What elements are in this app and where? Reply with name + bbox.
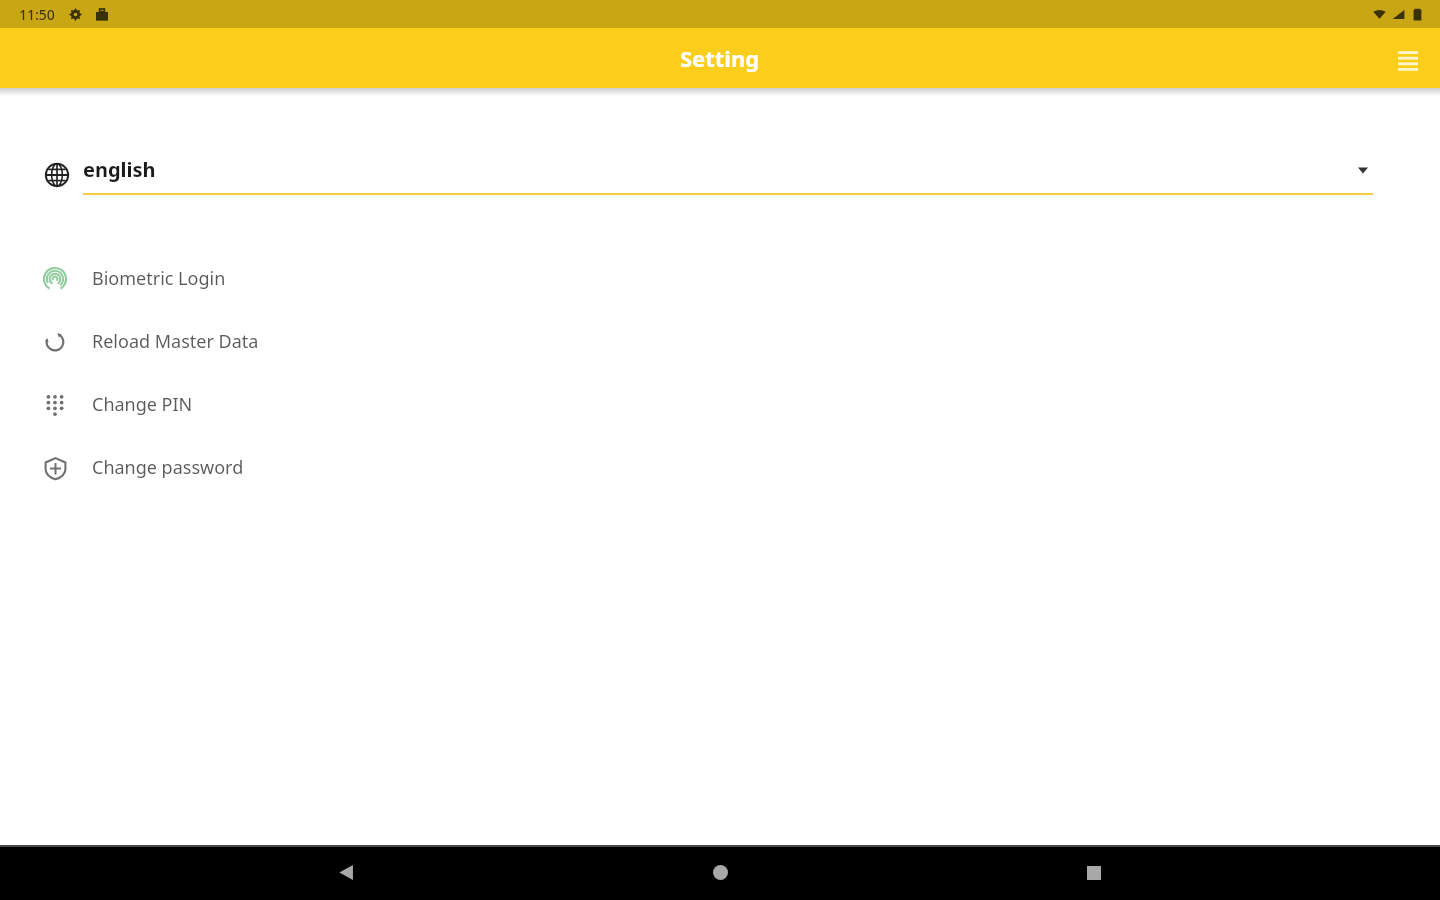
staticText: Change PIN [92,392,193,417]
staticText: english [83,156,156,183]
button[interactable]: Change PIN [0,373,1440,436]
staticText: Reload Master Data [92,329,259,354]
button[interactable]: Back [318,845,374,900]
button[interactable]: Reload Master Data [0,310,1440,373]
button[interactable]: Change password [0,436,1440,499]
button[interactable]: english [0,148,1440,202]
staticText: Biometric Login [92,266,226,291]
button[interactable]: Home [692,845,748,900]
staticText: Change password [92,455,244,480]
button[interactable]: Menu [1386,36,1430,80]
button[interactable]: Recent apps [1066,845,1122,900]
staticText: 11:50 [19,5,55,24]
staticText: Setting [680,43,760,73]
button[interactable]: Biometric Login [0,247,1440,310]
